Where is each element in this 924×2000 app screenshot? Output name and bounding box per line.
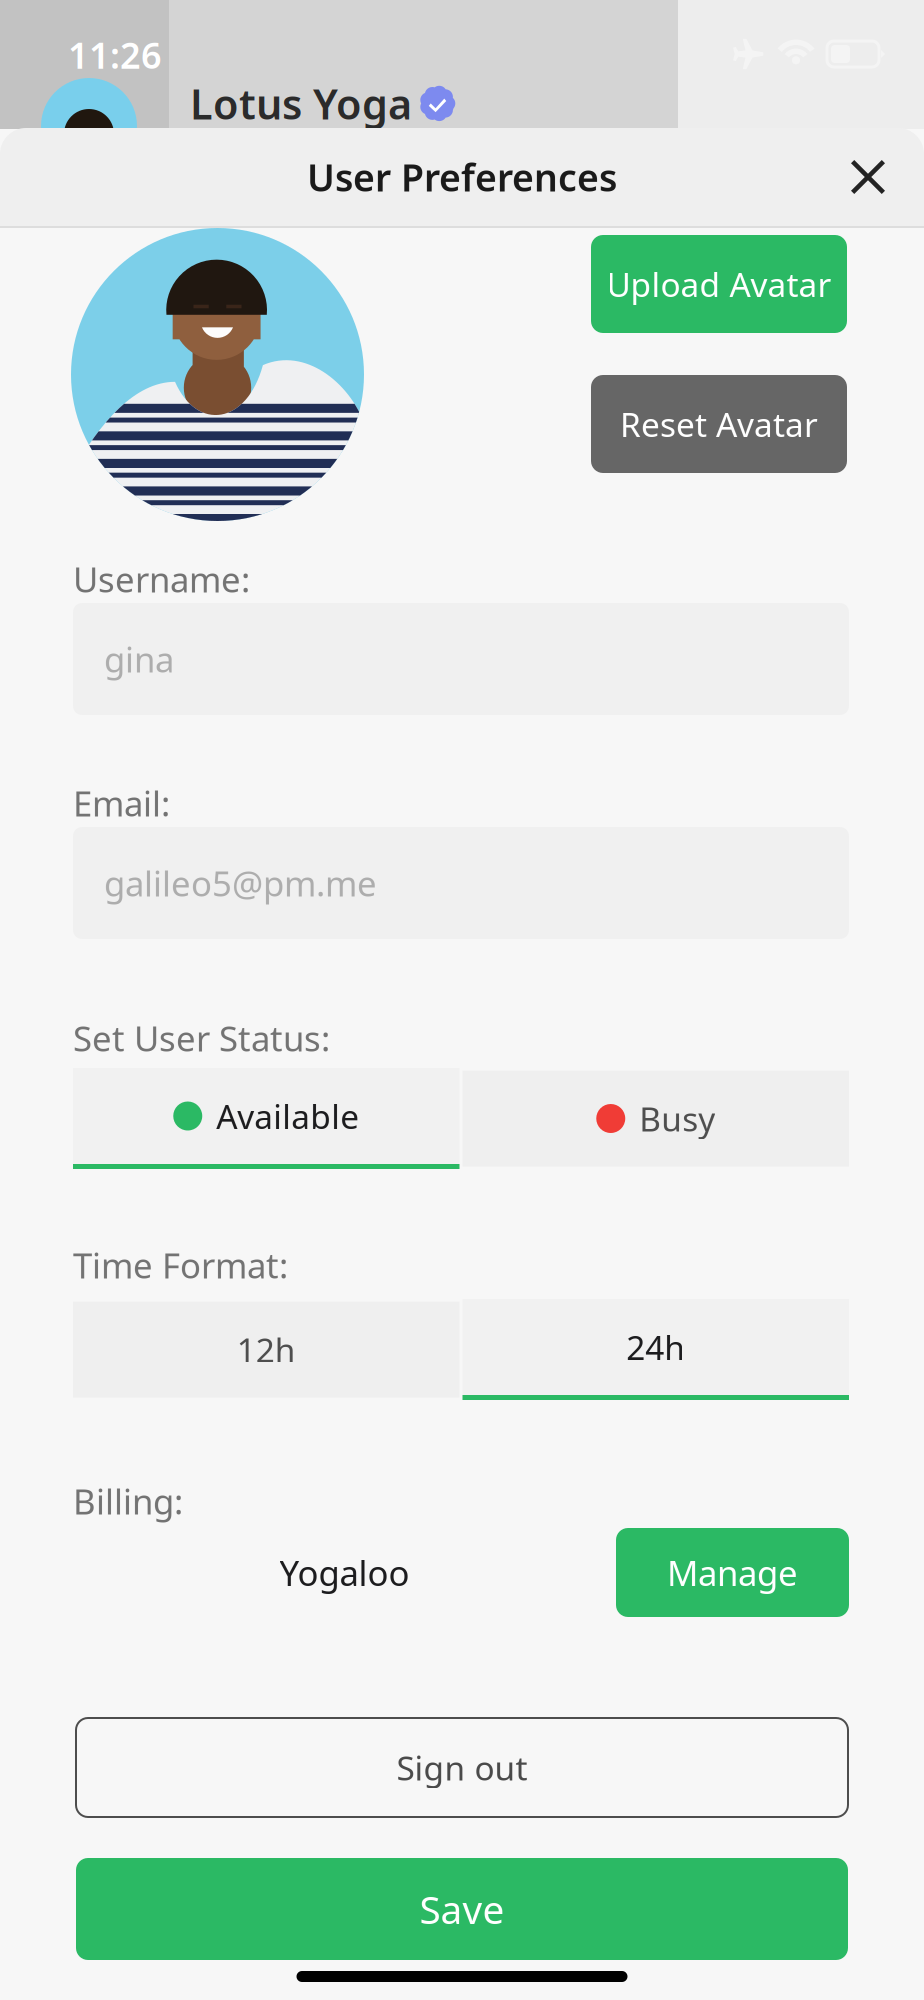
staticText: Set User Status: [73, 1015, 330, 1061]
staticText: Yogaloo [279, 1549, 409, 1595]
staticText: Sign out [396, 1745, 527, 1790]
staticText: User Preferences [307, 152, 617, 202]
staticText: Reset Avatar [620, 402, 818, 446]
button[interactable]: 12h [73, 1301, 459, 1397]
staticText: gina [104, 636, 174, 682]
button[interactable]: Available [73, 1068, 459, 1169]
staticText: Email: [73, 780, 170, 826]
staticText: Upload Avatar [606, 262, 831, 306]
staticText: Save [419, 1883, 504, 1935]
staticText: Lotus Yoga [190, 76, 412, 131]
staticText: 24h [626, 1325, 685, 1369]
staticText: 12h [237, 1327, 296, 1372]
button[interactable]: Close [832, 141, 904, 213]
staticText: Busy [639, 1096, 715, 1141]
staticText: galileo5@pm.me [104, 860, 377, 906]
staticText: Available [216, 1094, 359, 1138]
button[interactable]: Upload Avatar [591, 235, 847, 333]
staticText: Manage [667, 1549, 798, 1595]
button[interactable]: Sign out [76, 1718, 848, 1817]
button[interactable]: Busy [462, 1070, 849, 1166]
button[interactable]: Manage [616, 1528, 849, 1617]
staticText: 11:26 [68, 31, 162, 79]
staticText: Username: [73, 556, 250, 602]
staticText: Time Format: [73, 1242, 288, 1288]
staticText: Billing: [73, 1478, 183, 1524]
button[interactable]: 24h [462, 1299, 849, 1400]
button[interactable]: Save [76, 1858, 848, 1960]
button[interactable]: Reset Avatar [591, 375, 847, 473]
